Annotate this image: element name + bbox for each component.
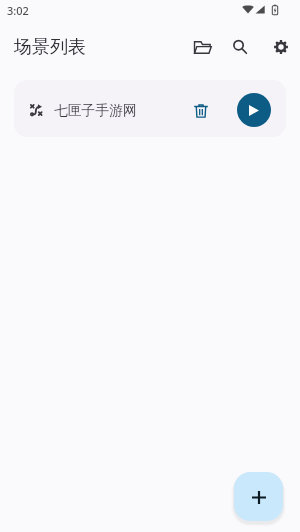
button[interactable]: Play xyxy=(237,93,271,127)
button[interactable]: Open folder xyxy=(182,27,222,67)
button[interactable]: Delete xyxy=(184,94,218,128)
button[interactable]: 七匣子手游网 xyxy=(14,80,286,137)
staticText: 七匣子手游网 xyxy=(54,102,137,119)
button[interactable]: Settings xyxy=(261,27,300,67)
staticText: 场景列表 xyxy=(14,36,86,59)
staticText: 3:02 xyxy=(7,3,29,18)
button[interactable]: Add scene xyxy=(234,472,283,521)
button[interactable]: Search xyxy=(220,27,260,67)
